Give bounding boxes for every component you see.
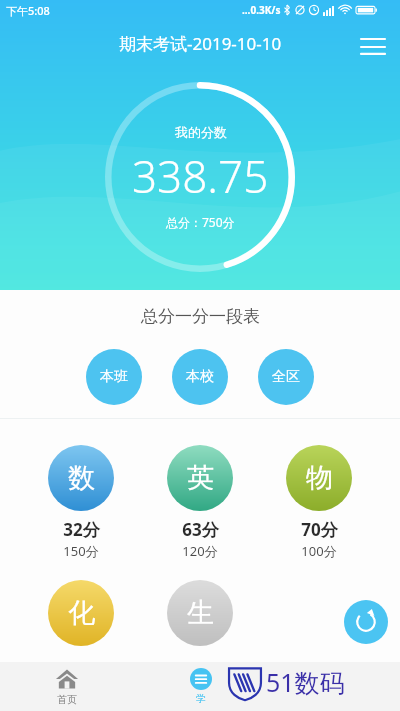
staticText: 338.75 [132,146,269,206]
staticText: 120分 [182,542,218,560]
staticText: 期末考试-2019-10-10 [119,32,282,55]
button[interactable]: Menu [356,30,390,64]
staticText: 本校 [186,368,214,386]
staticText: 下午5:08 [6,3,50,18]
staticText: 化 [68,596,95,630]
button[interactable]: 化 [43,580,119,646]
staticText: 150分 [63,542,99,560]
staticText: 51数码 [266,665,345,699]
staticText: 我的分数 [175,124,227,140]
staticText: 63分 [182,518,219,541]
button[interactable]: 本校 [172,349,228,405]
button[interactable]: 数 [43,445,119,560]
button[interactable]: 本班 [86,349,142,405]
button[interactable]: 物 [281,445,357,560]
staticText: 数 [68,461,95,495]
button[interactable]: 全区 [258,349,314,405]
staticText: 70分 [301,518,338,541]
staticText: 物 [306,461,333,495]
staticText: 首页 [57,693,77,706]
staticText: ...0.3K/s [242,3,281,17]
staticText: 生 [187,596,214,630]
button[interactable]: 英 [162,445,238,560]
button[interactable]: 首页 [0,667,134,706]
staticText: 100分 [301,542,337,560]
staticText: 总分一分一段表 [141,306,260,327]
button[interactable]: 生 [162,580,238,646]
staticText: 本班 [100,368,128,386]
button[interactable]: Refresh [344,600,388,644]
staticText: 学 [196,692,206,705]
staticText: 总分：750分 [166,214,235,230]
button[interactable]: 学 [134,668,267,705]
staticText: 英 [187,461,214,495]
staticText: 全区 [272,368,300,386]
staticText: 32分 [63,518,100,541]
